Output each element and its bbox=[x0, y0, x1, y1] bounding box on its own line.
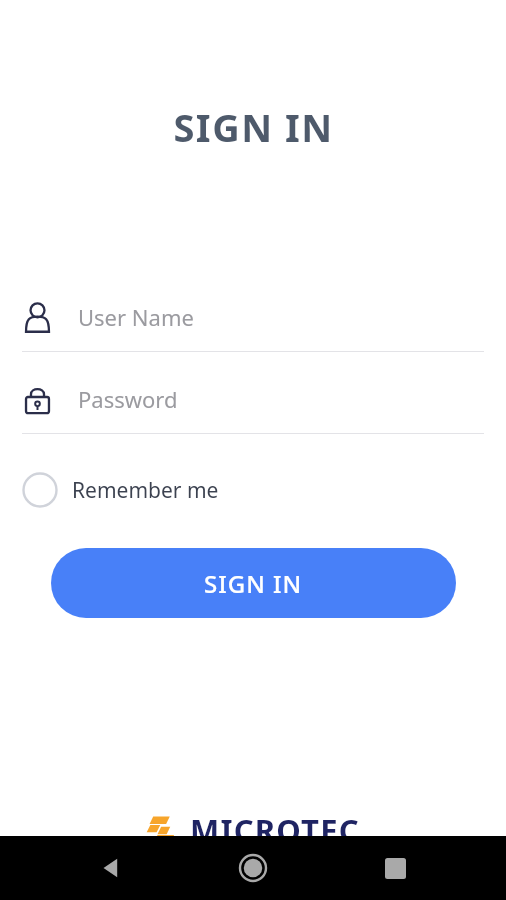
button[interactable]: Back bbox=[80, 837, 142, 899]
staticText: SIGN IN bbox=[173, 101, 334, 153]
staticText: Remember me bbox=[72, 476, 219, 505]
button[interactable]: Remember me bbox=[22, 467, 237, 513]
staticText: Password bbox=[78, 384, 178, 414]
staticText: User Name bbox=[78, 302, 194, 332]
button[interactable]: User Name field bbox=[0, 300, 506, 352]
button[interactable]: Recent apps bbox=[364, 837, 426, 899]
button[interactable]: SIGN IN bbox=[51, 548, 456, 618]
button[interactable]: Password field bbox=[0, 382, 506, 434]
staticText: SIGN IN bbox=[204, 567, 303, 600]
staticText: MICROTEC bbox=[190, 809, 360, 851]
button[interactable]: Home bbox=[222, 837, 284, 899]
